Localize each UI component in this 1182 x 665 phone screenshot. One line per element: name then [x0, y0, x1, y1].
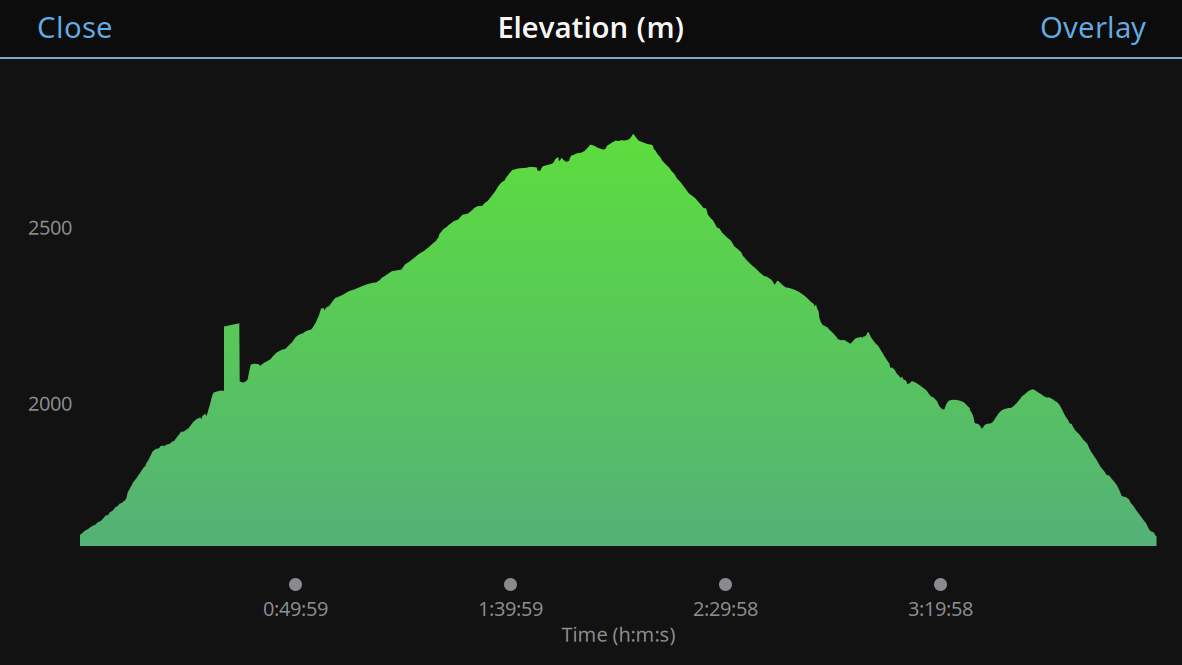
- button[interactable]: Overlay: [1018, 0, 1182, 57]
- staticText: Close: [37, 7, 113, 46]
- staticText: Time (h:m:s): [561, 621, 675, 647]
- staticText: Elevation (m): [497, 7, 684, 46]
- staticText: 2500: [28, 214, 72, 240]
- staticText: 0:49:59: [263, 595, 328, 622]
- staticText: 3:19:58: [908, 595, 973, 622]
- staticText: 2000: [28, 390, 72, 416]
- button[interactable]: Close: [0, 0, 135, 57]
- staticText: Overlay: [1040, 7, 1146, 46]
- staticText: 1:39:59: [478, 595, 543, 622]
- staticText: 2:29:58: [693, 595, 758, 622]
